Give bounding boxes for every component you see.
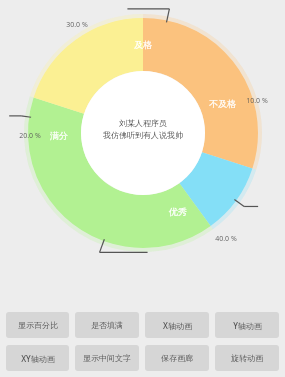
button[interactable]: XY轴动画 (6, 345, 69, 371)
staticText: 刘某人程序员 (119, 118, 167, 128)
staticText: 是否填满 (91, 320, 123, 330)
staticText: 保存画廊 (161, 353, 193, 363)
staticText: X轴动画 (163, 320, 192, 331)
staticText: 优秀 (169, 206, 187, 217)
staticText: 满分 (50, 130, 68, 141)
button[interactable]: 旋转动画 (215, 345, 279, 371)
staticText: 旋转动画 (231, 353, 263, 363)
staticText: 10.0 % (246, 96, 268, 106)
staticText: 显示中间文字 (83, 353, 131, 363)
staticText: 30.0 % (66, 20, 88, 30)
button[interactable]: 是否填满 (75, 312, 139, 338)
button[interactable]: 保存画廊 (145, 345, 209, 371)
staticText: 我仿佛听到有人说我帅 (103, 130, 183, 140)
staticText: 不及格 (209, 98, 236, 109)
button[interactable]: X轴动画 (145, 312, 209, 338)
button[interactable]: 显示中间文字 (75, 345, 139, 371)
staticText: 及格 (134, 39, 152, 50)
staticText: 显示百分比 (18, 320, 58, 330)
button[interactable]: 显示百分比 (6, 312, 69, 338)
staticText: 40.0 % (215, 234, 237, 244)
staticText: 20.0 % (19, 131, 41, 141)
button[interactable]: Y轴动画 (215, 312, 279, 338)
staticText: Y轴动画 (233, 320, 262, 331)
staticText: XY轴动画 (21, 353, 55, 364)
